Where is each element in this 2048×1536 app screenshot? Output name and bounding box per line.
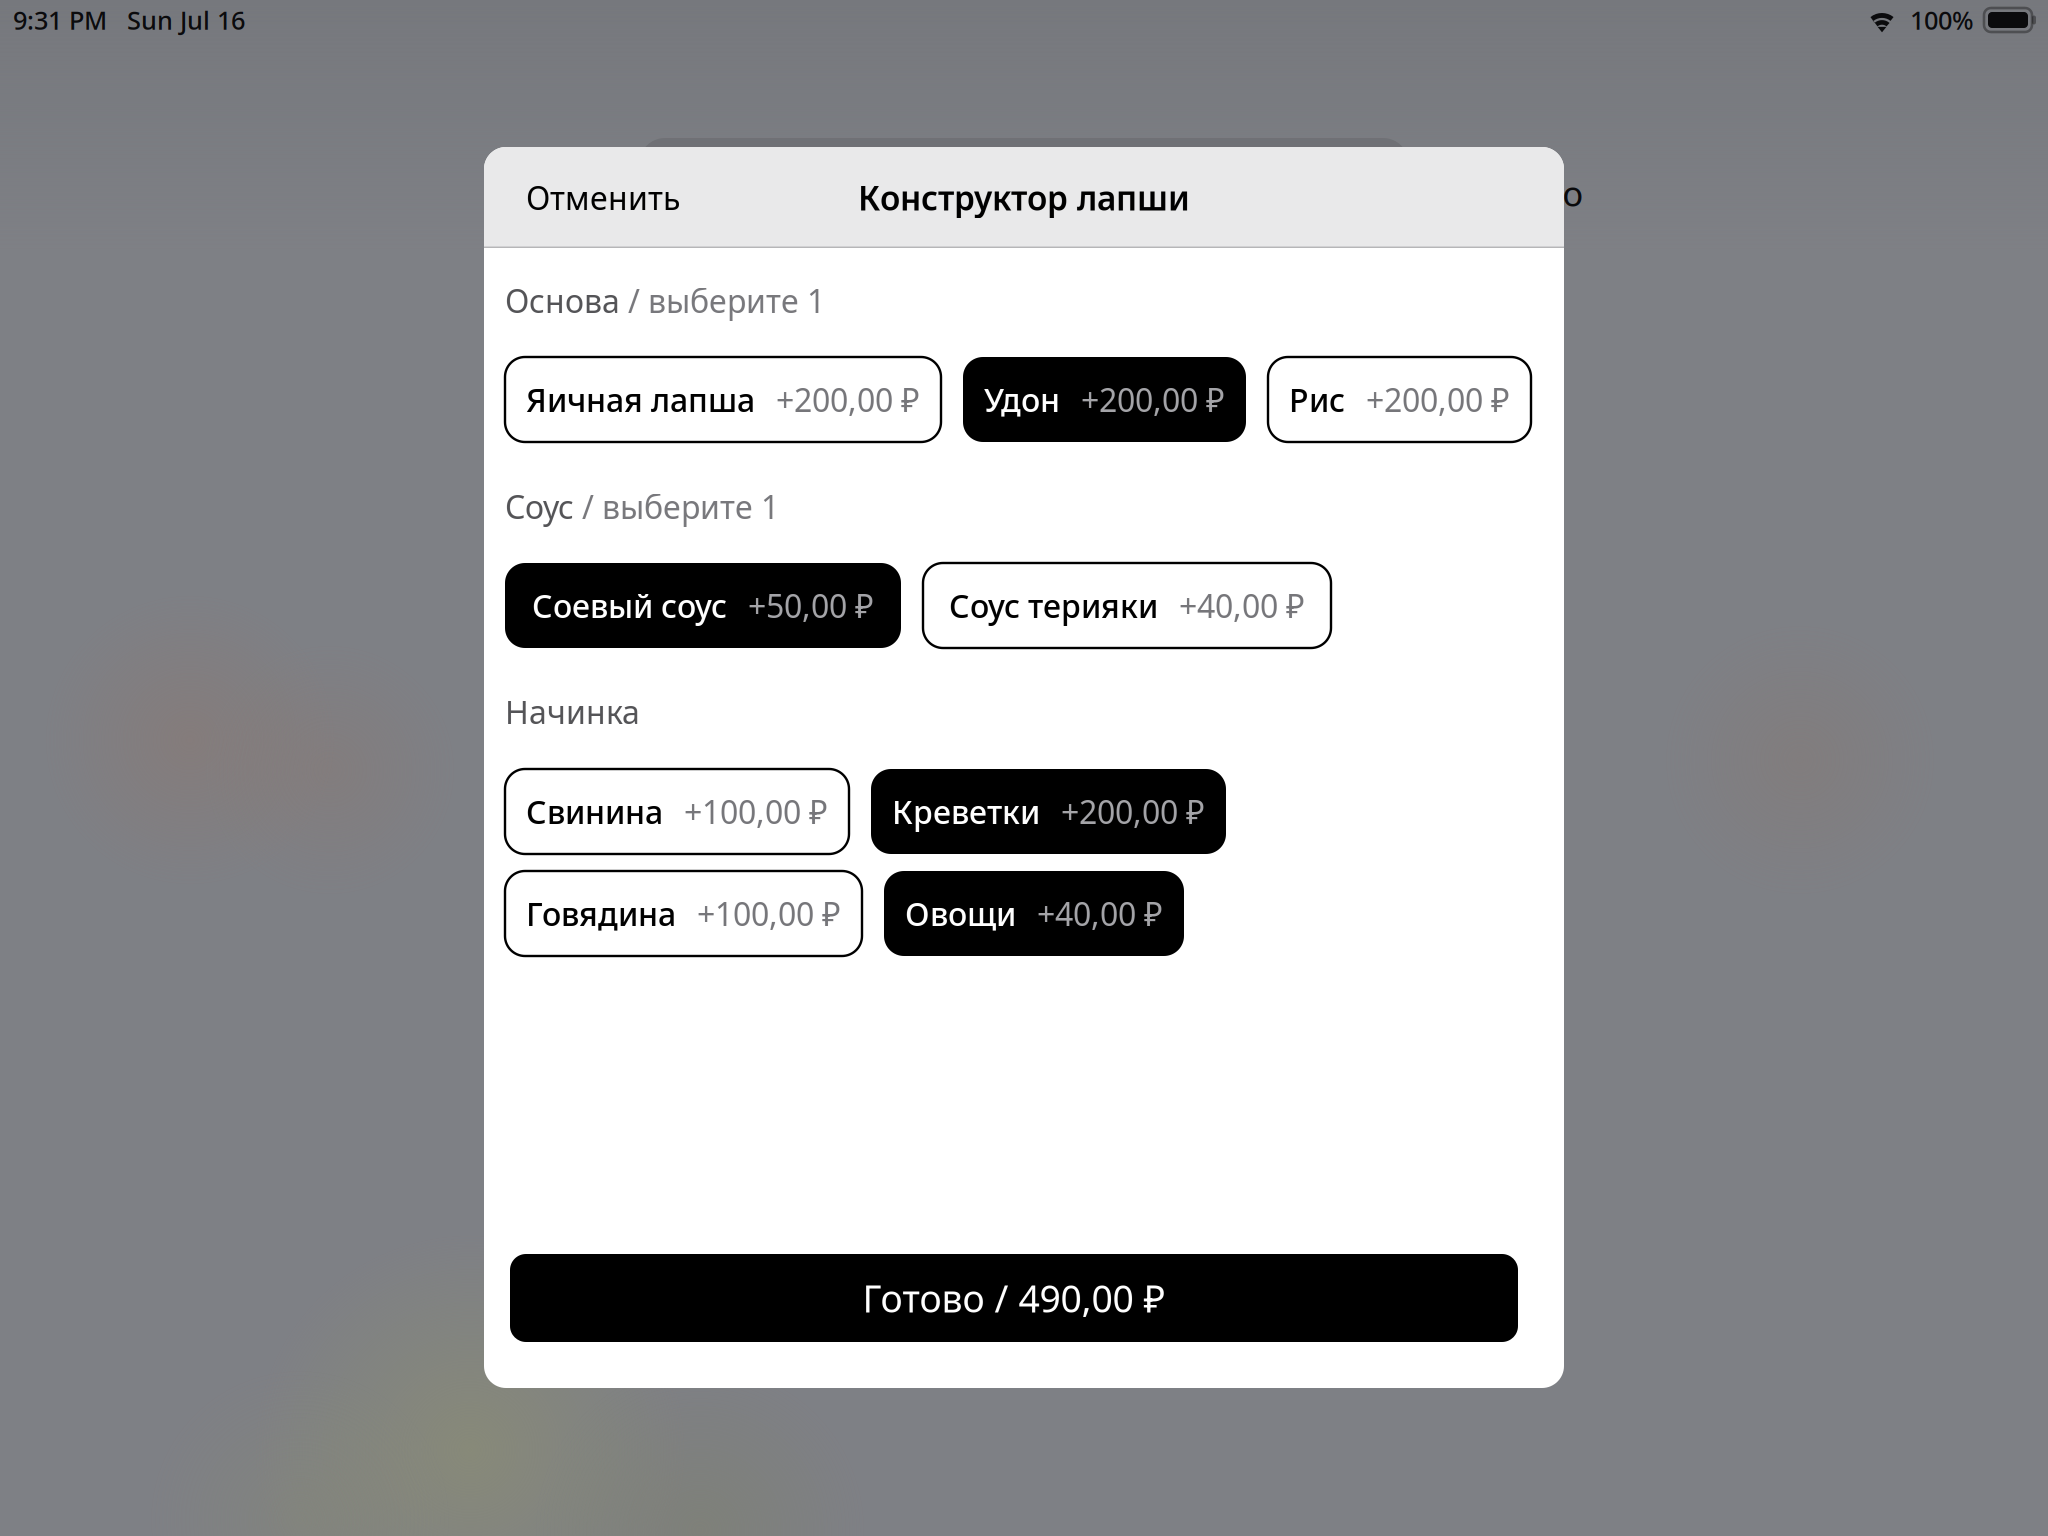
- button[interactable]: Соус терияки: [923, 563, 1331, 648]
- button[interactable]: Овощи: [884, 871, 1184, 956]
- button[interactable]: Рис: [1268, 357, 1531, 442]
- staticText: 100%: [1910, 3, 1974, 37]
- staticText: Удон: [984, 378, 1060, 421]
- button[interactable]: Креветки: [871, 769, 1226, 854]
- staticText: / выберите 1: [620, 279, 825, 322]
- staticText: Свинина: [526, 790, 663, 833]
- staticText: Яичная лапша: [526, 378, 755, 421]
- staticText: Креветки: [892, 790, 1040, 833]
- staticText: Соевый соус: [532, 584, 727, 627]
- staticText: 9:31 PM: [13, 3, 107, 37]
- staticText: Овощи: [905, 892, 1016, 935]
- button[interactable]: Свинина: [505, 769, 849, 854]
- button[interactable]: Удон: [963, 357, 1246, 442]
- staticText: +200,00 ₽: [1061, 790, 1205, 833]
- staticText: +100,00 ₽: [684, 790, 828, 833]
- staticText: о: [1562, 170, 1583, 216]
- staticText: +50,00 ₽: [748, 584, 874, 627]
- staticText: Начинка: [505, 690, 640, 733]
- staticText: +200,00 ₽: [1081, 378, 1225, 421]
- staticText: Соус: [505, 485, 574, 528]
- staticText: Конструктор лапши: [858, 175, 1190, 220]
- staticText: Отменить: [526, 176, 680, 219]
- staticText: +40,00 ₽: [1179, 584, 1305, 627]
- staticText: +200,00 ₽: [776, 378, 920, 421]
- staticText: Sun Jul 16: [127, 3, 245, 37]
- button[interactable]: Говядина: [505, 871, 862, 956]
- staticText: Говядина: [526, 892, 676, 935]
- button[interactable]: Отменить: [506, 160, 700, 235]
- button[interactable]: Соевый соус: [505, 563, 901, 648]
- staticText: Основа: [505, 279, 620, 322]
- staticText: Готово / 490,00 ₽: [862, 1273, 1165, 1323]
- staticText: +100,00 ₽: [697, 892, 841, 935]
- staticText: Рис: [1289, 378, 1345, 421]
- button[interactable]: Яичная лапша: [505, 357, 941, 442]
- staticText: +200,00 ₽: [1366, 378, 1510, 421]
- button[interactable]: Готово / 490,00 ₽: [510, 1254, 1518, 1342]
- staticText: +40,00 ₽: [1037, 892, 1163, 935]
- staticText: / выберите 1: [574, 485, 779, 528]
- staticText: Соус терияки: [949, 584, 1158, 627]
